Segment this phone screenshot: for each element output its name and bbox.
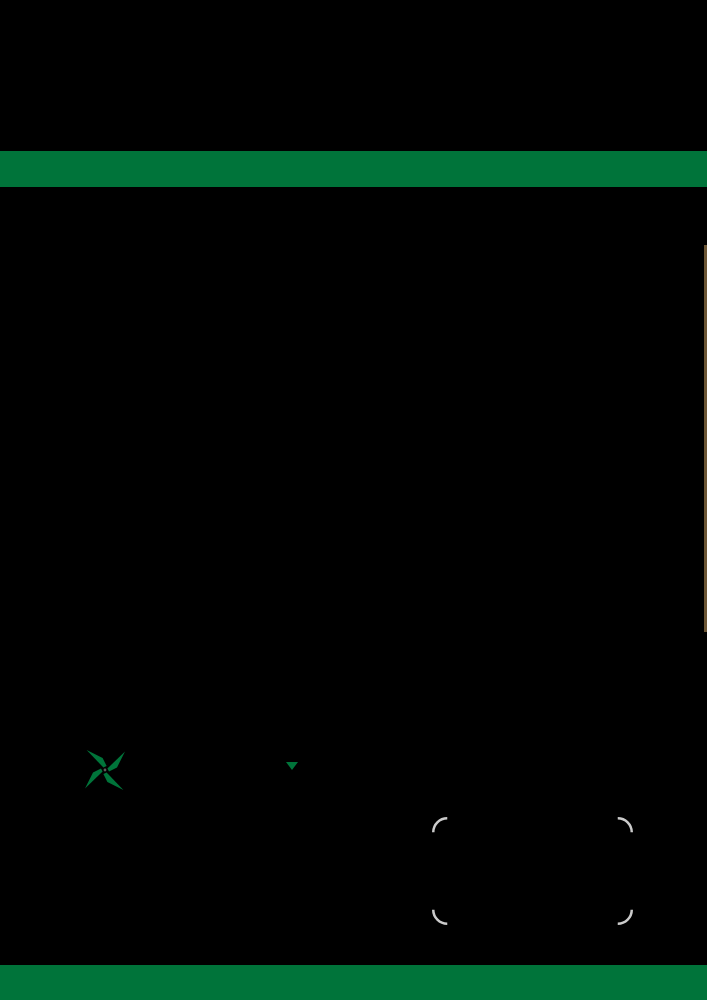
button[interactable]: Scan frame	[432, 817, 633, 925]
button[interactable]: Expand	[278, 752, 306, 780]
button[interactable]: Brand logo	[85, 750, 125, 790]
